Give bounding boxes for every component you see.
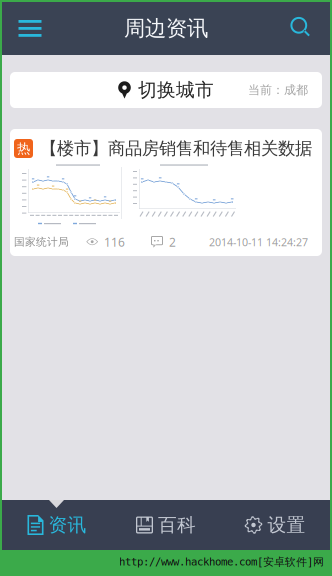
button[interactable]: 百科 — [111, 500, 220, 550]
staticText: 资讯 — [48, 513, 86, 536]
staticText: 116 — [104, 234, 125, 250]
button[interactable]: 热 — [10, 129, 322, 256]
button[interactable]: 设置 — [220, 500, 329, 550]
staticText: 2014-10-11 14:24:27 — [209, 235, 308, 249]
staticText: 2 — [169, 234, 176, 250]
staticText: 热 — [17, 140, 30, 157]
button[interactable]: 搜索 — [274, 2, 330, 55]
staticText: 当前：成都 — [248, 83, 308, 97]
staticText: 【楼市】商品房销售和待售相关数据 — [40, 138, 312, 159]
staticText: 设置 — [267, 513, 305, 536]
staticText: 周边资讯 — [124, 15, 208, 42]
staticText: 百科 — [158, 513, 196, 536]
staticText: http://www.hackhome.com[安卓软件]网 — [119, 555, 324, 569]
staticText: 国家统计局 — [14, 235, 69, 248]
button[interactable]: 资讯 — [2, 500, 111, 550]
button[interactable]: 切换城市 — [10, 72, 322, 108]
staticText: 切换城市 — [138, 78, 214, 101]
button[interactable]: 菜单 — [2, 2, 58, 55]
